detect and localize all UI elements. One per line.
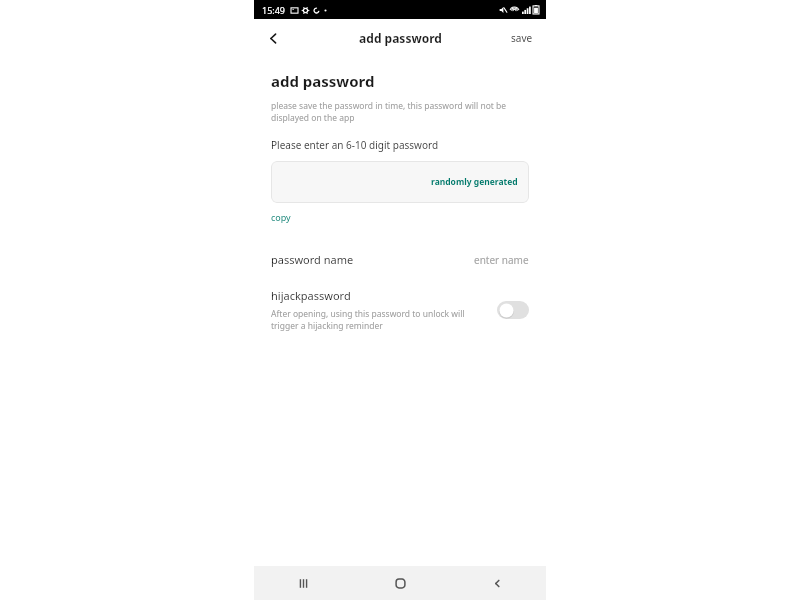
staticText: After opening, using this password to un… bbox=[271, 308, 485, 332]
staticText: enter name bbox=[474, 253, 529, 267]
staticText: hijackpassword bbox=[271, 288, 351, 303]
button[interactable]: Hijack password toggle bbox=[497, 301, 529, 319]
button[interactable]: save bbox=[498, 19, 546, 57]
button[interactable]: Back bbox=[254, 19, 292, 57]
staticText: copy bbox=[271, 211, 291, 223]
staticText: randomly generated bbox=[431, 176, 518, 188]
staticText: save bbox=[511, 31, 533, 45]
staticText: please save the password in time, this p… bbox=[271, 100, 529, 124]
staticText: password name bbox=[271, 252, 354, 267]
staticText: 15:49 bbox=[262, 4, 286, 16]
button[interactable]: Recent apps bbox=[254, 566, 352, 600]
button[interactable]: Back bbox=[449, 566, 546, 600]
button[interactable]: password name bbox=[271, 249, 529, 270]
button[interactable]: copy bbox=[271, 209, 291, 225]
staticText: add password bbox=[271, 71, 375, 91]
button[interactable]: randomly generated bbox=[271, 161, 529, 203]
button[interactable]: Home bbox=[352, 566, 449, 600]
staticText: add password bbox=[359, 30, 442, 46]
staticText: Please enter an 6-10 digit password bbox=[271, 138, 439, 152]
